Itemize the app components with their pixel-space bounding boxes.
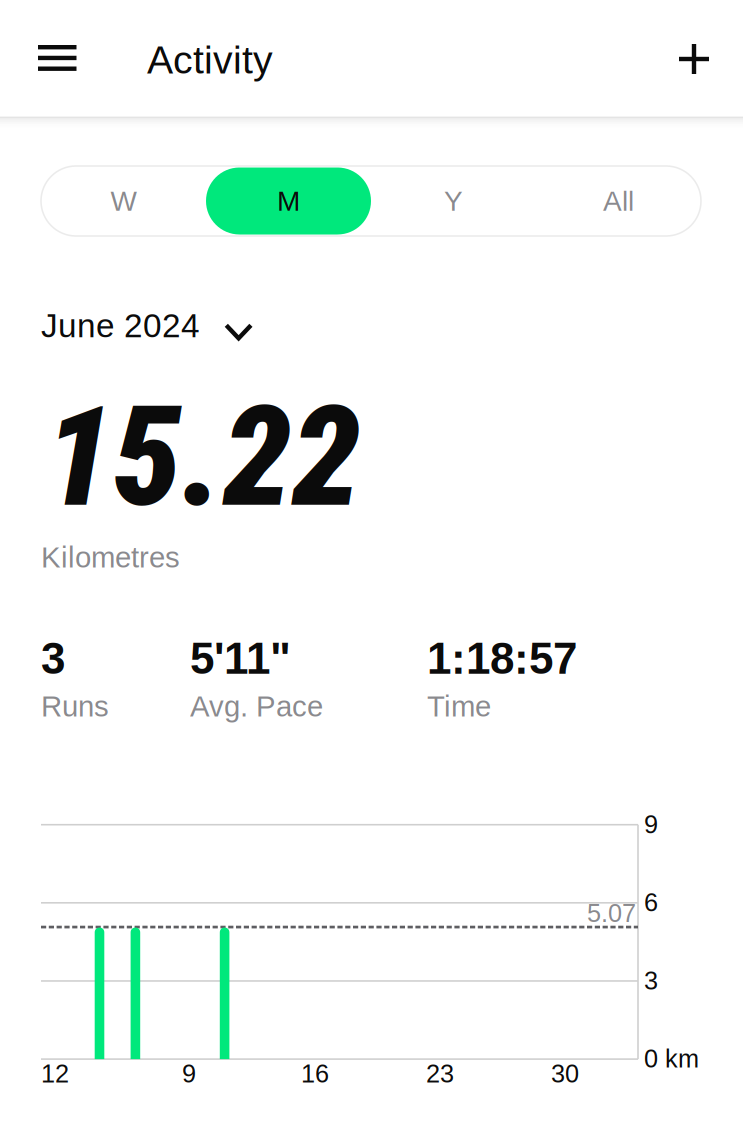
staticText: Y xyxy=(444,185,463,217)
staticText: 0 km xyxy=(644,1045,699,1073)
staticText: 9 xyxy=(182,1059,196,1088)
staticText: W xyxy=(110,185,136,217)
staticText: Time xyxy=(427,690,491,723)
staticText: June 2024 xyxy=(41,307,200,344)
button[interactable]: Menu xyxy=(22,29,92,87)
staticText: 15.22 xyxy=(44,376,361,538)
staticText: 12 xyxy=(41,1059,69,1088)
button[interactable]: W xyxy=(41,166,206,236)
staticText: 9 xyxy=(644,810,658,838)
staticText: Avg. Pace xyxy=(190,690,323,723)
staticText: 1:18:57 xyxy=(427,634,577,683)
staticText: Kilometres xyxy=(41,541,180,574)
staticText: 3 xyxy=(41,634,65,683)
staticText: 16 xyxy=(301,1059,329,1088)
staticText: 5'11" xyxy=(190,634,291,683)
staticText: Runs xyxy=(41,690,109,723)
button[interactable]: June 2024 xyxy=(29,306,277,362)
staticText: 6 xyxy=(644,888,658,917)
button[interactable]: Add activity xyxy=(663,28,725,90)
staticText: All xyxy=(603,185,634,217)
staticText: 30 xyxy=(551,1059,579,1088)
staticText: 3 xyxy=(644,966,658,995)
staticText: 23 xyxy=(426,1059,454,1088)
staticText: 5.07 xyxy=(587,899,636,927)
staticText: M xyxy=(277,185,300,217)
button[interactable]: M xyxy=(206,166,371,236)
button[interactable]: All xyxy=(536,166,701,236)
button[interactable]: Y xyxy=(371,166,536,236)
staticText: Activity xyxy=(147,38,273,82)
